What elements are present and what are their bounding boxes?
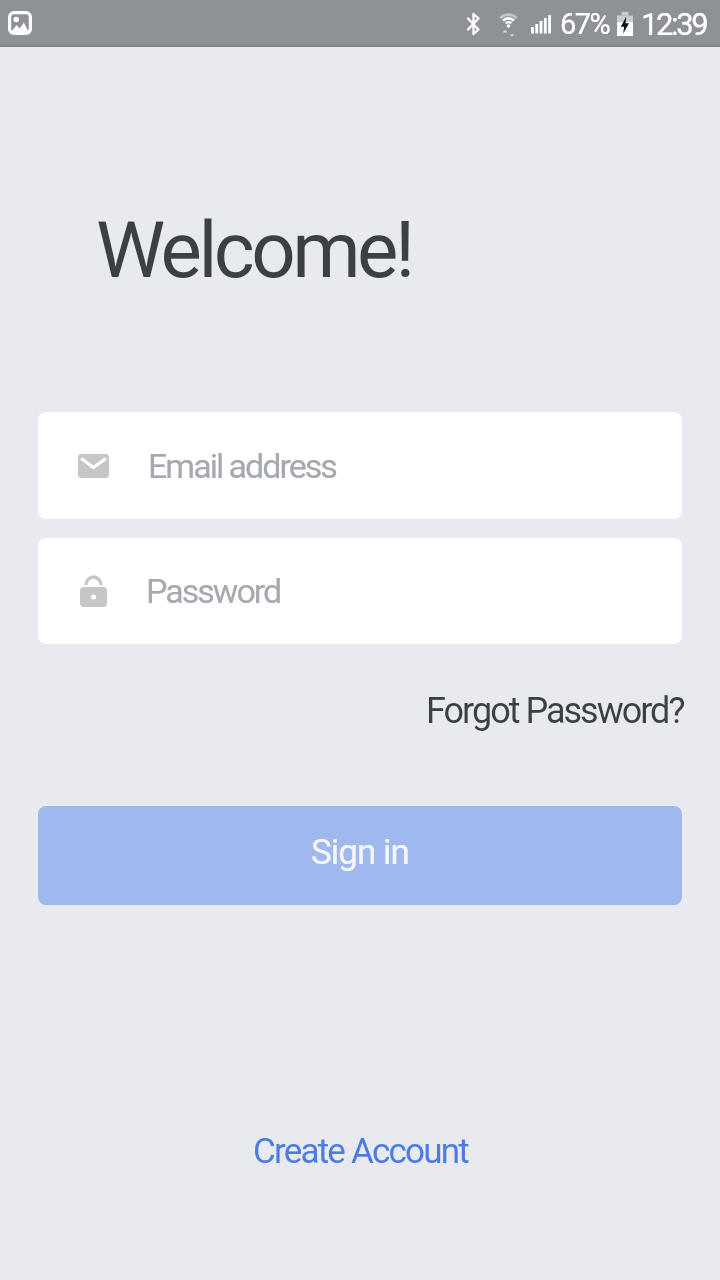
staticText: Sign in [311,832,409,873]
staticText: Email address [148,446,336,486]
button[interactable]: Email address [38,412,682,519]
staticText: Create Account [253,1131,468,1172]
button[interactable]: Create Account [253,1131,468,1172]
staticText: 67% [560,7,610,41]
button[interactable]: Password [38,538,682,644]
staticText: Welcome! [96,205,412,296]
staticText: 12:39 [641,6,707,42]
button[interactable]: Forgot Password? [426,690,684,732]
button[interactable]: Sign in [38,806,682,905]
staticText: Password [146,571,281,611]
staticText: Forgot Password? [426,690,684,732]
